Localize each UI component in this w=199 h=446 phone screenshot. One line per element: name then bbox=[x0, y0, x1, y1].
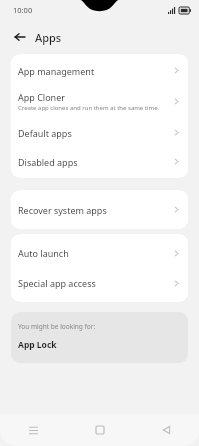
staticText: Recover system apps bbox=[18, 204, 107, 216]
staticText: 10:00 bbox=[13, 5, 33, 15]
staticText: You might be looking for: bbox=[18, 322, 96, 331]
button[interactable]: Default apps bbox=[11, 118, 188, 147]
staticText: Disabled apps bbox=[18, 156, 78, 168]
button[interactable]: Back bbox=[133, 414, 199, 446]
button[interactable]: Recent apps bbox=[0, 414, 67, 446]
button[interactable]: App Lock bbox=[18, 339, 181, 351]
staticText: Create app clones and run them at the sa… bbox=[18, 104, 160, 112]
button[interactable]: Back bbox=[9, 26, 31, 48]
button[interactable]: Home bbox=[67, 414, 133, 446]
staticText: Special app access bbox=[18, 277, 96, 289]
button[interactable]: Special app access bbox=[11, 268, 188, 298]
staticText: Apps bbox=[35, 30, 62, 45]
button[interactable]: Recover system apps bbox=[11, 190, 188, 229]
staticText: Auto launch bbox=[18, 247, 69, 259]
staticText: App management bbox=[18, 65, 95, 77]
button[interactable]: App Cloner bbox=[11, 85, 188, 118]
staticText: App Lock bbox=[18, 339, 57, 351]
staticText: Default apps bbox=[18, 127, 72, 139]
staticText: App Cloner bbox=[18, 91, 65, 103]
button[interactable]: App management bbox=[11, 56, 188, 85]
button[interactable]: Disabled apps bbox=[11, 147, 188, 176]
button[interactable]: Auto launch bbox=[11, 238, 188, 268]
